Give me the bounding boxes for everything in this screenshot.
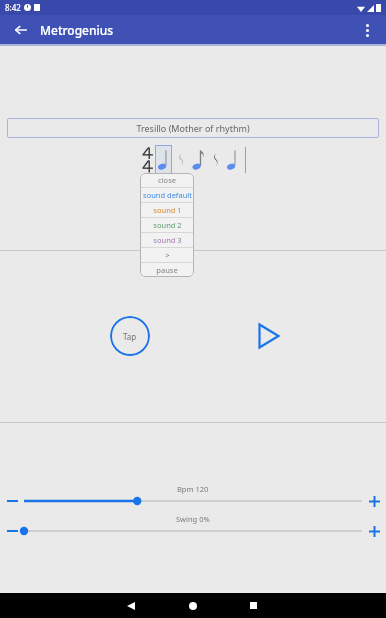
button[interactable]: Decrease (0, 494, 24, 508)
button[interactable]: sound default (140, 188, 194, 202)
staticText: Tresillo (Mother of rhythm) (136, 122, 250, 134)
button[interactable]: Play (252, 319, 286, 353)
button[interactable]: Recents (240, 593, 266, 618)
staticText: sound 1 (153, 205, 182, 215)
button[interactable]: Quarter note (224, 145, 242, 175)
button[interactable]: Time signature (139, 145, 155, 175)
staticText: 8:42 (5, 2, 21, 13)
button[interactable] (24, 494, 362, 508)
staticText: Tap (123, 331, 137, 342)
button[interactable]: More options (354, 17, 380, 43)
button[interactable]: sound 3 (140, 233, 194, 247)
staticText: sound 3 (153, 235, 182, 245)
button[interactable]: sound 2 (140, 218, 194, 232)
button[interactable]: close (140, 173, 194, 187)
staticText: > (165, 250, 170, 260)
staticText: Swing 0% (176, 514, 210, 524)
button[interactable]: pause (140, 263, 194, 277)
button[interactable]: Quarter note selected (155, 145, 172, 175)
button[interactable]: Back (8, 17, 34, 43)
button[interactable]: Increase (362, 494, 386, 508)
button[interactable]: Tap (110, 316, 150, 356)
button[interactable]: Back (118, 593, 144, 618)
button[interactable]: Home (180, 593, 206, 618)
button[interactable]: Decrease (0, 524, 24, 538)
staticText: sound default (143, 190, 192, 200)
button[interactable]: Tresillo (Mother of rhythm) (7, 118, 379, 138)
button[interactable] (24, 524, 362, 538)
button[interactable]: Rest (208, 145, 224, 175)
staticText: sound 2 (153, 220, 182, 230)
button[interactable]: Rest (172, 145, 190, 175)
staticText: Bpm 120 (177, 484, 209, 494)
button[interactable]: Increase (362, 524, 386, 538)
staticText: pause (156, 265, 178, 275)
button[interactable]: > (140, 248, 194, 262)
button[interactable]: Eighth note (190, 145, 208, 175)
staticText: Metrogenius (40, 22, 114, 38)
button[interactable]: sound 1 (140, 203, 194, 217)
staticText: close (158, 175, 176, 185)
